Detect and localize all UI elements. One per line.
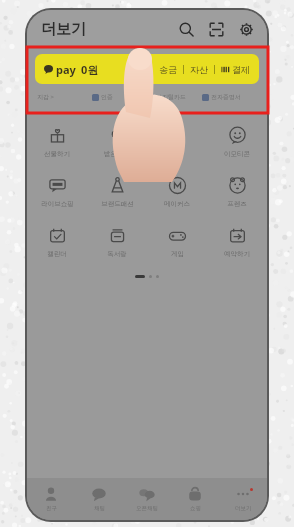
staticText: 자산 [190, 64, 208, 75]
staticText: pay [56, 62, 76, 77]
staticText: 결제 [232, 64, 250, 75]
button[interactable]: 캘린더 [27, 217, 87, 267]
staticText: 브랜드패션 [101, 200, 134, 208]
button[interactable]: 톡딜 [147, 117, 207, 167]
staticText: 선물하기 [44, 150, 70, 158]
staticText: 톡딜 [171, 150, 184, 158]
staticText: 캘린더 [47, 250, 67, 258]
staticText: 디지털카드 [156, 93, 186, 101]
staticText: 받은선물 [104, 150, 130, 158]
button[interactable]: Settings [235, 18, 257, 40]
staticText: 0원 [81, 62, 99, 77]
button[interactable]: Search [175, 18, 197, 40]
button[interactable]: 메이커스 [147, 167, 207, 217]
button[interactable]: 채팅 [75, 478, 123, 520]
button[interactable]: 더보기 [219, 478, 267, 520]
staticText: 메이커스 [164, 200, 190, 208]
button[interactable]: 받은선물 [87, 117, 147, 167]
button[interactable]: 지갑 > [37, 93, 92, 101]
staticText: 쇼핑 [190, 505, 201, 512]
button[interactable]: 예약하기 [207, 217, 267, 267]
button[interactable]: 독서랑 [87, 217, 147, 267]
button[interactable]: 브랜드패션 [87, 167, 147, 217]
button[interactable]: 게임 [147, 217, 207, 267]
staticText: 이모티콘 [224, 150, 250, 158]
staticText: 게임 [171, 250, 184, 258]
button[interactable]: 이모티콘 [207, 117, 267, 167]
staticText: 오픈채팅 [136, 505, 158, 512]
staticText: 인증 [101, 93, 113, 101]
staticText: 전자증명서 [211, 93, 241, 101]
staticText: 라이브쇼핑 [41, 200, 74, 208]
staticText: 더보기 [41, 20, 86, 39]
staticText: 독서랑 [107, 250, 127, 258]
staticText: 친구 [46, 505, 57, 512]
button[interactable]: pay [35, 54, 259, 84]
button[interactable]: 프렌즈 [207, 167, 267, 217]
button[interactable]: 친구 [27, 478, 75, 520]
button[interactable]: 전자증명서 [202, 93, 257, 101]
staticText: 예약하기 [224, 250, 250, 258]
button[interactable]: Scan code [205, 18, 227, 40]
staticText: 더보기 [235, 505, 252, 512]
button[interactable]: 오픈채팅 [123, 478, 171, 520]
staticText: 1 [130, 105, 141, 131]
button[interactable]: 라이브쇼핑 [27, 167, 87, 217]
staticText: 채팅 [94, 505, 105, 512]
staticText: 지갑 > [37, 93, 54, 101]
button[interactable]: 선물하기 [27, 117, 87, 167]
button[interactable]: 쇼핑 [171, 478, 219, 520]
staticText: 송금 [159, 64, 177, 75]
staticText: 프렌즈 [227, 200, 247, 208]
button[interactable]: 인증 [92, 93, 147, 101]
button[interactable]: 디지털카드 [147, 93, 202, 101]
